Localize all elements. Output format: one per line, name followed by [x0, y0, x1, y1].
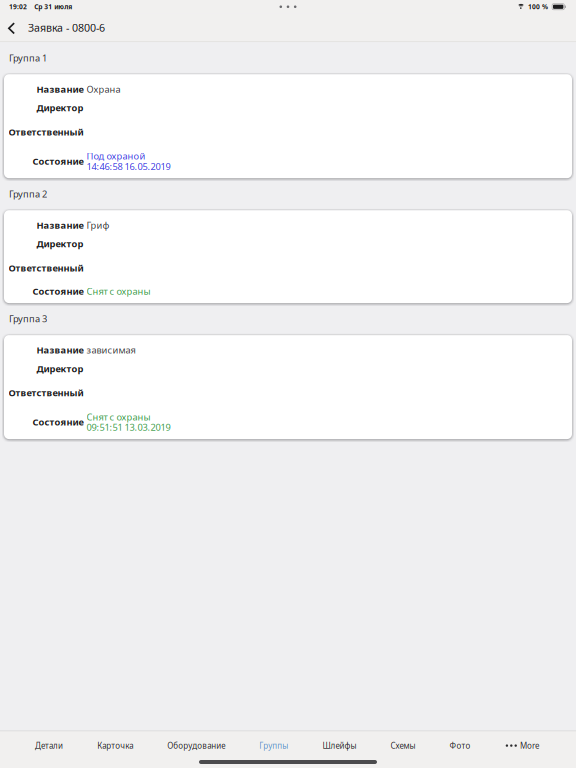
staticText: Гриф [86, 219, 109, 231]
staticText: Состояние [32, 155, 83, 167]
staticText: Группа 2 [9, 187, 47, 200]
staticText: Оборудование [167, 740, 225, 751]
staticText: Ответственный [8, 386, 83, 399]
staticText: Снят с охраны [86, 285, 150, 297]
staticText: 14:46:58 16.05.2019 [86, 160, 170, 173]
staticText: Ответственный [8, 261, 83, 274]
staticText: Шлейфы [322, 740, 356, 751]
button[interactable]: Оборудование [159, 731, 233, 760]
staticText: More [520, 740, 540, 751]
staticText: Фото [450, 740, 471, 751]
staticText: Схемы [390, 740, 415, 751]
staticText: Снят с охраны [86, 410, 150, 423]
button[interactable]: Схемы [382, 731, 423, 760]
staticText: 19:02 [9, 2, 27, 11]
staticText: Группы [259, 740, 288, 751]
staticText: Директор [36, 362, 83, 375]
staticText: Под охраной [86, 149, 145, 162]
staticText: Директор [36, 237, 83, 250]
staticText: Охрана [86, 83, 120, 95]
staticText: 09:51:51 13.03.2019 [86, 421, 170, 433]
staticText: Заявка - 0800-6 [28, 20, 105, 35]
staticText: Ср 31 июля [34, 2, 72, 11]
button[interactable]: Фото [442, 731, 479, 760]
staticText: Детали [35, 740, 63, 751]
button[interactable]: More [497, 731, 549, 760]
button[interactable]: Back [1, 14, 21, 41]
staticText: 100 % [528, 2, 548, 11]
button[interactable]: Карточка [89, 731, 141, 760]
staticText: Группа 3 [9, 312, 47, 325]
staticText: Название [36, 83, 83, 95]
staticText: Название [36, 344, 83, 356]
staticText: зависимая [86, 344, 135, 356]
staticText: Название [36, 219, 83, 231]
staticText: Директор [36, 101, 83, 114]
staticText: Карточка [97, 740, 133, 751]
staticText: Состояние [32, 285, 83, 297]
button[interactable]: Детали [27, 731, 71, 760]
button[interactable]: Шлейфы [314, 731, 364, 760]
staticText: Состояние [32, 416, 83, 428]
staticText: Группа 1 [9, 51, 47, 64]
button[interactable]: Группы [251, 731, 296, 760]
staticText: Ответственный [8, 125, 83, 138]
